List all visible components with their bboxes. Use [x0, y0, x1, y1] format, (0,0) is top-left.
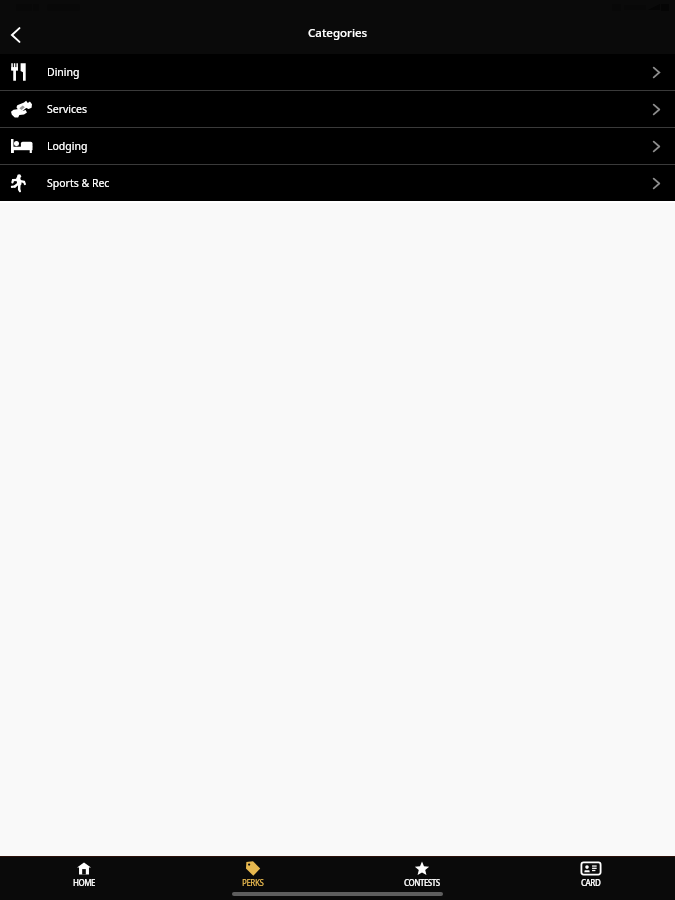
- staticText: Dining: [47, 65, 80, 79]
- button[interactable]: Sports & Rec: [0, 165, 675, 201]
- staticText: Services: [47, 102, 88, 116]
- staticText: CONTESTS: [404, 877, 440, 888]
- staticText: PERKS: [242, 877, 264, 888]
- button[interactable]: Dining: [0, 54, 675, 90]
- button[interactable]: Services: [0, 91, 675, 127]
- button[interactable]: Lodging: [0, 128, 675, 164]
- staticText: Categories: [308, 25, 368, 41]
- button[interactable]: HOME: [0, 857, 168, 888]
- staticText: HOME: [73, 877, 96, 888]
- button[interactable]: CONTESTS: [337, 857, 506, 888]
- staticText: Sports & Rec: [47, 176, 110, 190]
- button[interactable]: PERKS: [168, 857, 337, 888]
- button[interactable]: Back: [0, 16, 31, 54]
- staticText: Lodging: [47, 139, 88, 153]
- button[interactable]: CARD: [506, 857, 675, 888]
- staticText: CARD: [581, 877, 601, 888]
